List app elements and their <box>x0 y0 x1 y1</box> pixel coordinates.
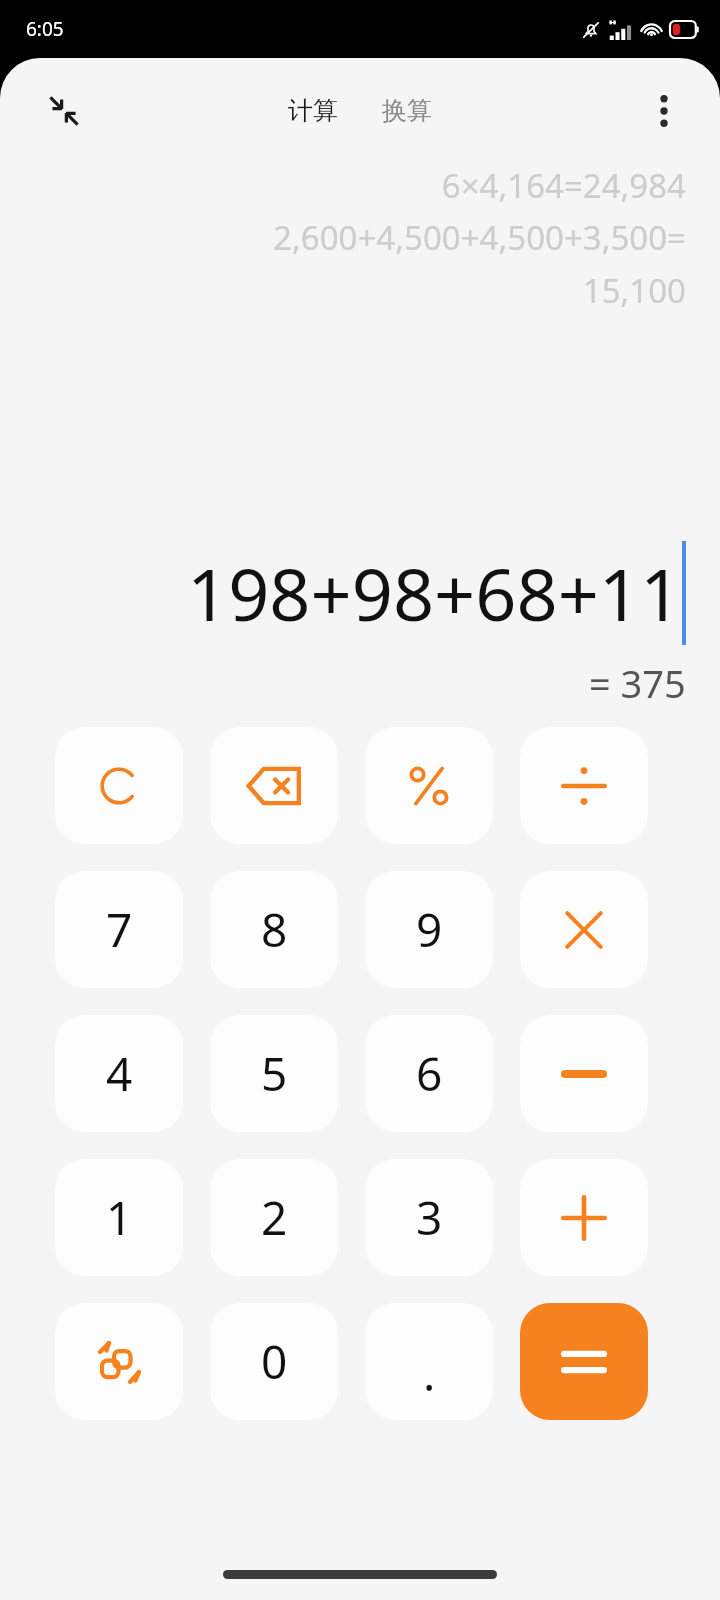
staticText: 6 <box>416 1042 443 1105</box>
staticText: 1 <box>106 1186 133 1249</box>
staticText: 9 <box>416 898 443 961</box>
button[interactable]: Divide <box>520 727 648 844</box>
button[interactable]: 2 <box>210 1159 338 1276</box>
staticText: 6×4,164=24,984 <box>441 163 686 203</box>
staticText: 2,600+4,500+4,500+3,500= <box>273 215 686 260</box>
staticText: 7 <box>106 898 133 961</box>
button[interactable]: Minus <box>520 1015 648 1132</box>
button[interactable]: Clear <box>55 727 183 844</box>
button[interactable]: 计算 <box>280 89 346 132</box>
staticText: 198+98+68+11 <box>187 544 682 642</box>
staticText: 3 <box>416 1186 443 1249</box>
button[interactable]: 8 <box>210 871 338 988</box>
button[interactable]: Collapse <box>36 83 92 139</box>
button[interactable]: 9 <box>365 871 493 988</box>
button[interactable]: More options <box>638 85 690 137</box>
button[interactable]: Backspace <box>210 727 338 844</box>
button[interactable]: Scientific mode <box>55 1303 183 1420</box>
staticText: 6:05 <box>26 16 64 42</box>
button[interactable]: Percent <box>365 727 493 844</box>
staticText: = 375 <box>589 657 686 709</box>
button[interactable]: 1 <box>55 1159 183 1276</box>
button[interactable]: Multiply <box>520 871 648 988</box>
staticText: 换算 <box>382 95 432 126</box>
staticText: 4 <box>106 1042 133 1105</box>
staticText: . <box>423 1342 436 1405</box>
button[interactable]: Plus <box>520 1159 648 1276</box>
button[interactable]: 5 <box>210 1015 338 1132</box>
staticText: 2 <box>261 1186 288 1249</box>
button[interactable]: 0 <box>210 1303 338 1420</box>
staticText: 5 <box>261 1042 288 1105</box>
button[interactable]: 4 <box>55 1015 183 1132</box>
button[interactable]: 换算 <box>374 89 440 132</box>
button[interactable]: 6 <box>365 1015 493 1132</box>
staticText: 计算 <box>288 95 338 126</box>
staticText: 15,100 <box>582 268 686 313</box>
button[interactable]: Equals <box>520 1303 648 1420</box>
staticText: 8 <box>261 898 288 961</box>
button[interactable]: . <box>365 1303 493 1420</box>
button[interactable]: 7 <box>55 871 183 988</box>
button[interactable]: 3 <box>365 1159 493 1276</box>
staticText: 0 <box>261 1330 288 1393</box>
